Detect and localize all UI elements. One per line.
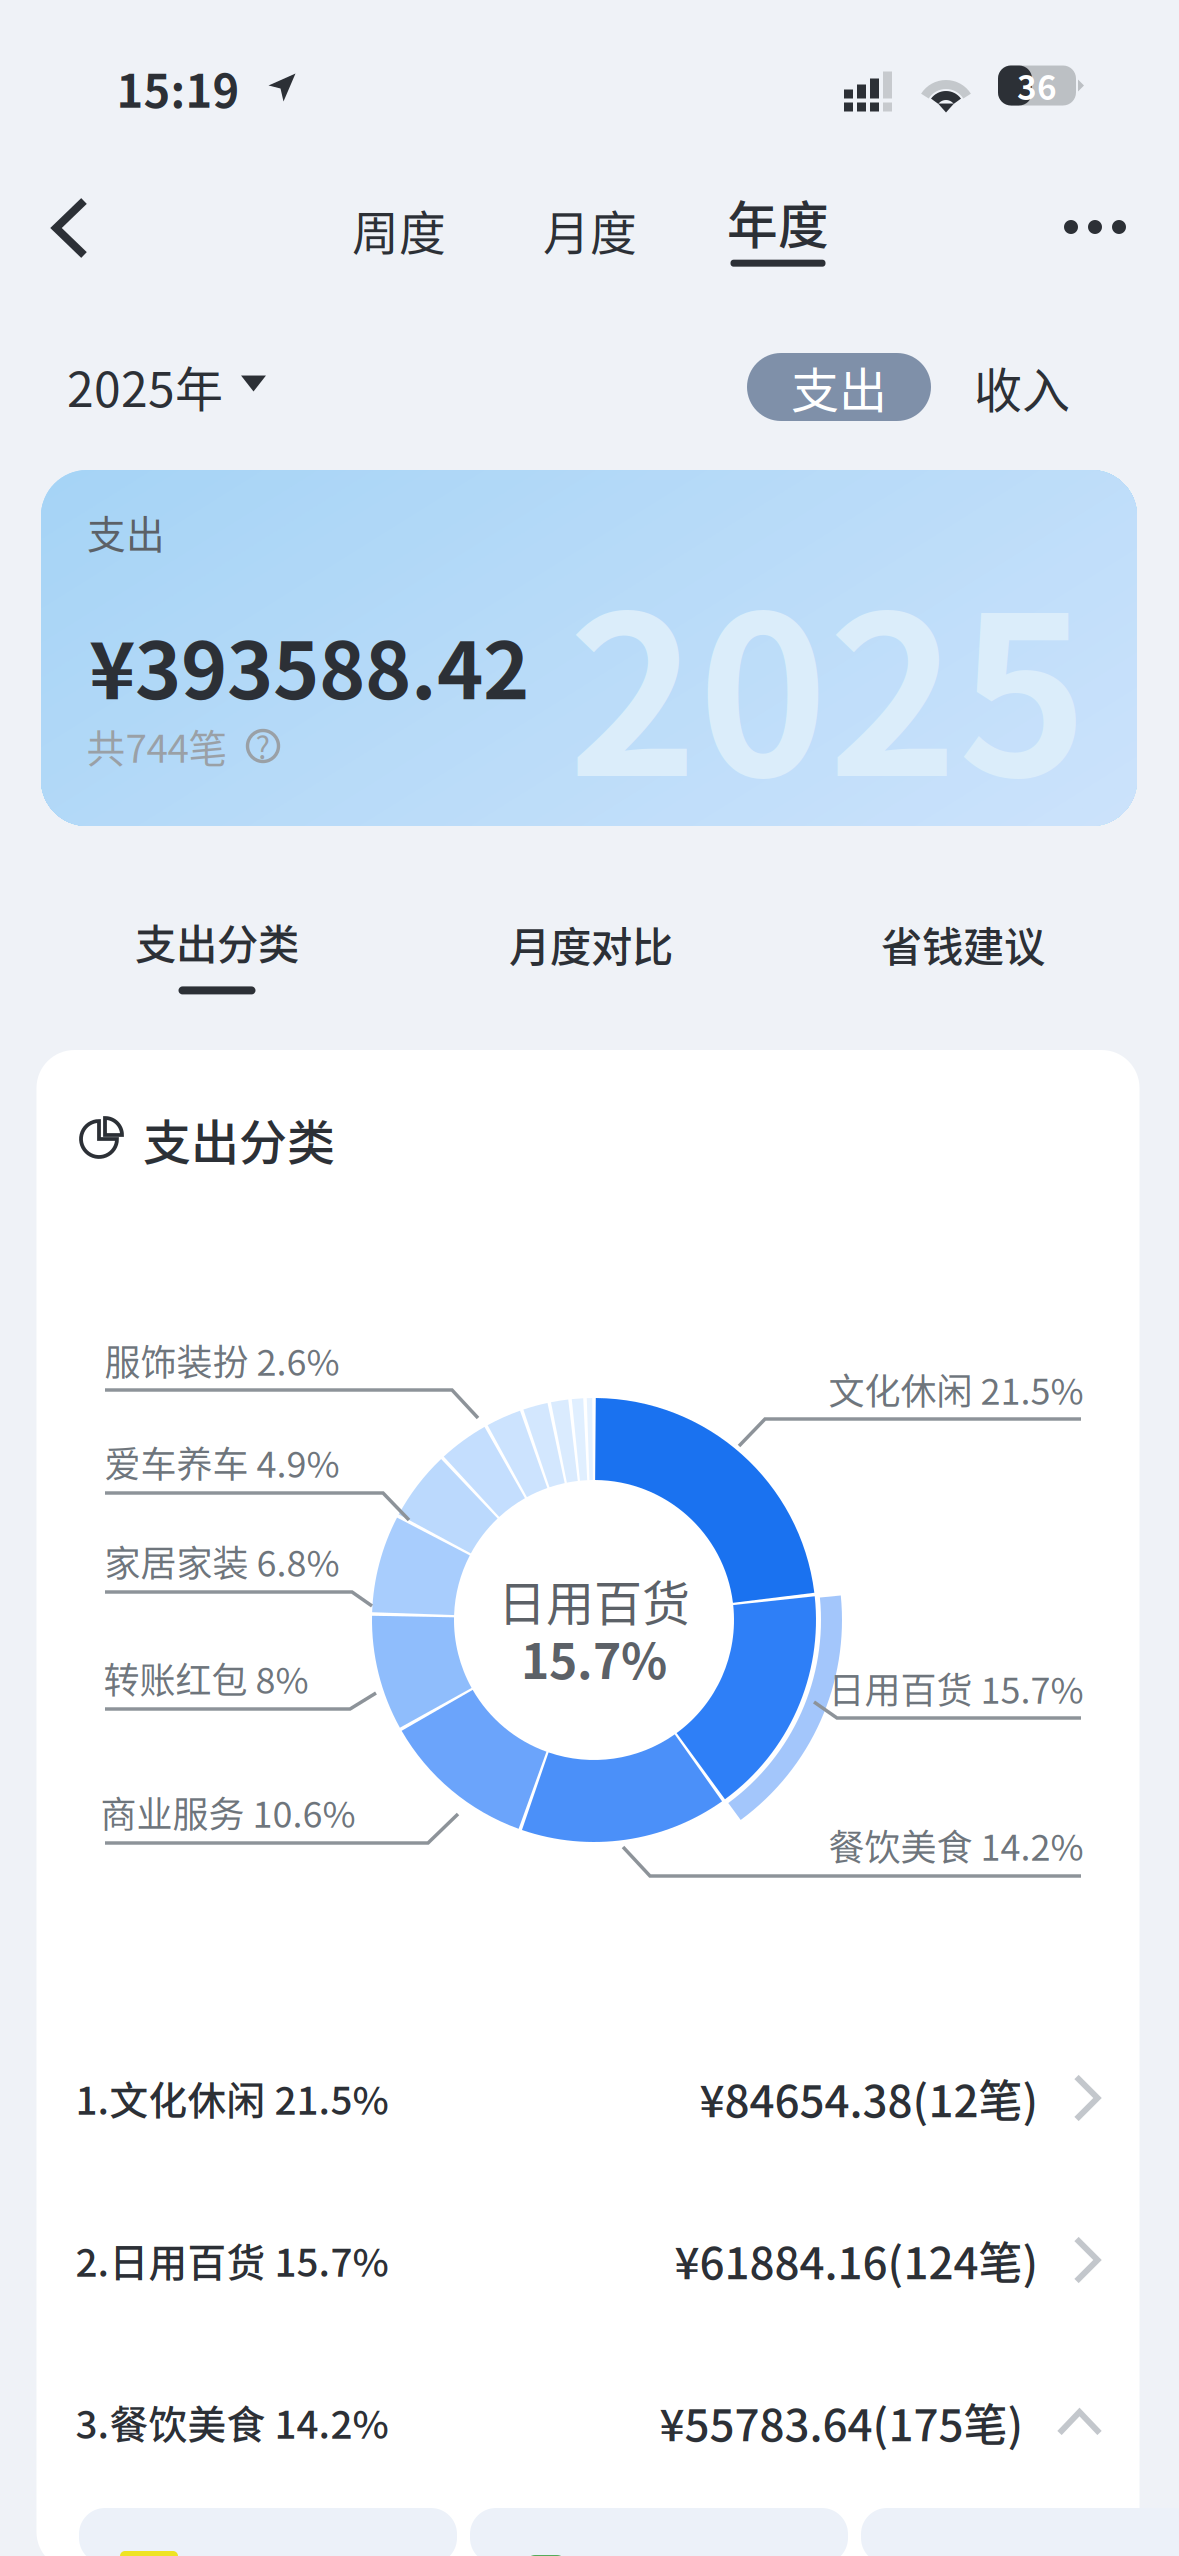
staticText: 年度 [727, 185, 829, 259]
button[interactable]: 周度 [338, 182, 460, 278]
button[interactable]: 1.文化休闲 21.5% [75, 2018, 1102, 2178]
staticText: 服饰装扮 2.6% [104, 1334, 339, 1386]
staticText: 省钱建议 [881, 914, 1045, 974]
button[interactable]: 2025年 [57, 341, 275, 431]
button[interactable]: 更多 [1042, 198, 1148, 256]
staticText: 爱车养车 4.9% [104, 1436, 339, 1488]
staticText: 2025 [568, 521, 1088, 839]
button[interactable]: 2.日用百货 15.7% [75, 2180, 1102, 2340]
staticText: 15:19 [116, 55, 239, 121]
staticText: 36 [1017, 61, 1057, 110]
staticText: 支出分类 [135, 912, 299, 971]
staticText: 支出分类 [143, 1104, 335, 1174]
staticText: 支出 [87, 504, 165, 560]
button[interactable]: 年度 [713, 175, 843, 277]
staticText: 文化休闲 21.5% [828, 1363, 1083, 1415]
staticText: ? [255, 724, 270, 768]
button[interactable] [79, 2508, 457, 2556]
staticText: 日用百货 15.7% [828, 1662, 1083, 1714]
staticText: ¥84654.38(12笔) [699, 2066, 1038, 2130]
button[interactable]: 3.餐饮美食 14.2% [75, 2342, 1102, 2502]
button[interactable]: 支出分类 [121, 904, 313, 1002]
staticText: 共744笔 [86, 718, 227, 774]
staticText: 日用百货 [498, 1565, 690, 1635]
button[interactable]: 返回 [33, 179, 107, 277]
button[interactable]: 支出 [747, 353, 931, 421]
staticText: 月度对比 [509, 914, 673, 974]
button[interactable]: 月度对比 [495, 906, 687, 982]
button[interactable]: 省钱建议 [867, 906, 1059, 982]
staticText: 月度 [543, 196, 637, 264]
staticText: 2025年 [67, 351, 223, 421]
staticText: 周度 [352, 196, 446, 264]
staticText: 商业服务 10.6% [100, 1786, 355, 1838]
staticText: 15.7% [521, 1623, 667, 1693]
button[interactable] [470, 2508, 848, 2556]
staticText: 支出 [791, 352, 887, 422]
staticText: 3.餐饮美食 14.2% [75, 2394, 388, 2450]
button[interactable]: 收入 [960, 338, 1084, 436]
staticText: 收入 [974, 352, 1070, 422]
staticText: ¥55783.64(175笔) [659, 2390, 1023, 2454]
staticText: 1.文化休闲 21.5% [75, 2070, 388, 2126]
staticText: 2.日用百货 15.7% [75, 2232, 388, 2288]
staticText: ¥393588.42 [89, 608, 529, 722]
staticText: 餐饮美食 14.2% [828, 1819, 1083, 1871]
staticText: ¥61884.16(124笔) [674, 2228, 1038, 2292]
button[interactable]: 月度 [529, 182, 651, 278]
staticText: 转账红包 8% [103, 1652, 308, 1704]
staticText: 家居家装 6.8% [104, 1535, 339, 1587]
